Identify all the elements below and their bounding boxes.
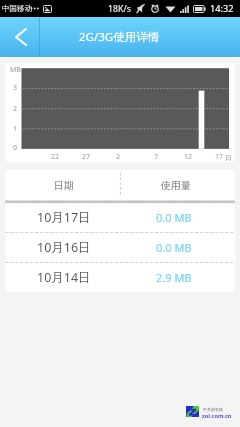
staticText: 2 (13, 104, 18, 114)
staticText: 2G/3G使用详情 (79, 29, 160, 45)
staticText: 中国移动 (2, 4, 32, 13)
staticText: 1 (13, 124, 18, 134)
staticText: 27 (82, 152, 91, 162)
staticText: 10月17日 (37, 209, 91, 226)
staticText: 17 (215, 152, 224, 162)
staticText: 使用量 (161, 179, 191, 192)
button[interactable]: Back (0, 17, 39, 57)
staticText: 0 (13, 143, 18, 153)
staticText: 2.9 MB (156, 270, 192, 285)
staticText: 10月16日 (37, 239, 91, 256)
staticText: 0.0 MB (156, 210, 192, 225)
staticText: zol.com.cn (202, 412, 232, 420)
staticText: 3 (13, 83, 18, 93)
staticText: 12 (184, 152, 193, 162)
staticText: MB (10, 65, 21, 75)
staticText: 0.0 MB (156, 240, 192, 255)
staticText: 7 (154, 152, 159, 162)
staticText: 22 (51, 152, 60, 162)
button[interactable]: 10月14日 (5, 263, 235, 292)
staticText: 2 (116, 152, 121, 162)
staticText: 18K/s (108, 3, 131, 15)
button[interactable]: 10月16日 (5, 233, 235, 262)
staticText: 中关村在线 (203, 407, 223, 412)
staticText: 14:32 (210, 2, 234, 15)
staticText: 日 (225, 153, 232, 162)
staticText: 日期 (54, 179, 74, 192)
staticText: 10月14日 (37, 269, 91, 286)
button[interactable]: 10月17日 (5, 203, 235, 232)
